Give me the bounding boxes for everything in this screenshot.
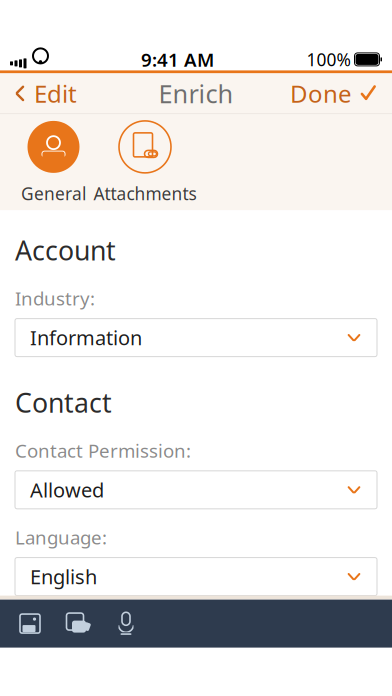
staticText: Industry:	[15, 286, 95, 311]
button[interactable]: Information	[15, 319, 377, 357]
staticText: Edit	[34, 77, 77, 109]
staticText: Language:	[15, 525, 107, 550]
staticText: Allowed	[30, 476, 104, 503]
button[interactable]: Add photo	[6, 600, 54, 648]
staticText: Enrich	[158, 77, 233, 110]
button[interactable]: Done	[276, 73, 392, 113]
button[interactable]: Edit	[0, 73, 91, 113]
button[interactable]: Record audio	[102, 600, 150, 648]
staticText: Account	[15, 232, 116, 268]
button[interactable]: General	[15, 121, 92, 215]
button[interactable]: English	[15, 558, 377, 596]
staticText: 100%	[306, 48, 350, 71]
staticText: Attachments	[93, 182, 196, 205]
staticText: 9:41 AM	[141, 47, 214, 72]
button[interactable]: Allowed	[15, 471, 377, 509]
staticText: English	[30, 563, 97, 590]
staticText: Contact Permission:	[15, 438, 191, 463]
staticText: Done	[290, 77, 352, 109]
staticText: General	[21, 182, 86, 205]
staticText: Contact	[15, 385, 112, 420]
button[interactable]: Record video	[54, 600, 102, 648]
staticText: Information	[30, 324, 142, 351]
button[interactable]: Attachments	[92, 121, 198, 215]
